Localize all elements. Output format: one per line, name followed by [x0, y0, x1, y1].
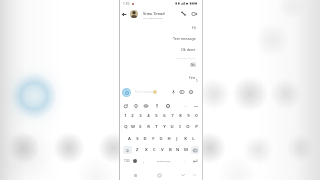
staticText: C	[153, 147, 156, 153]
button[interactable]: L	[189, 134, 197, 144]
staticText: Ok done	[181, 47, 196, 52]
button[interactable]: Voice message	[169, 87, 178, 96]
button[interactable]: Google search	[122, 102, 129, 109]
button[interactable]: H	[165, 134, 173, 144]
button[interactable]: ,	[139, 155, 148, 166]
button[interactable]: Home	[155, 171, 163, 179]
button[interactable]: Settings	[164, 102, 171, 109]
button[interactable]: G	[157, 134, 165, 144]
staticText: Srinu Tonad	[143, 11, 165, 16]
staticText: U	[170, 124, 174, 130]
button[interactable]: Contact photo	[130, 10, 138, 18]
button[interactable]: Q	[122, 122, 129, 132]
staticText: 8	[179, 113, 182, 119]
staticText: English (US)	[157, 159, 171, 162]
button[interactable]: M	[182, 145, 190, 155]
button[interactable]: J	[173, 134, 181, 144]
button[interactable]: V	[158, 145, 166, 155]
staticText: L	[192, 136, 195, 142]
staticText: No	[191, 63, 195, 67]
staticText: 4	[147, 113, 150, 119]
button[interactable]: U	[168, 122, 176, 132]
button[interactable]: 8	[176, 111, 184, 121]
button[interactable]: More options	[182, 103, 189, 110]
staticText: Sent · Mon 1:10 PM	[176, 57, 196, 60]
button[interactable]: Backspace	[191, 146, 199, 154]
button[interactable]: 1	[122, 111, 129, 121]
button[interactable]: ?123	[122, 155, 131, 166]
button[interactable]: Stickers	[153, 102, 160, 109]
staticText: G	[159, 136, 163, 142]
button[interactable]: Clipboard	[132, 102, 139, 109]
button[interactable]: D	[141, 134, 149, 144]
button[interactable]: A	[125, 134, 133, 144]
staticText: Yes	[192, 60, 196, 63]
staticText: Y	[163, 124, 166, 130]
staticText: O	[186, 124, 190, 130]
button[interactable]: Emoji keyboard	[131, 155, 139, 166]
button[interactable]: Y	[160, 122, 168, 132]
button[interactable]: 5	[152, 111, 160, 121]
staticText: P	[195, 124, 198, 130]
button[interactable]: N	[174, 145, 182, 155]
staticText: 6	[163, 113, 166, 119]
button[interactable]: 4	[144, 111, 152, 121]
button[interactable]: Call	[178, 8, 189, 19]
button[interactable]: Gallery	[177, 87, 186, 96]
staticText: K	[184, 136, 187, 142]
button[interactable]: T	[152, 122, 160, 132]
staticText: Z	[136, 147, 139, 153]
button[interactable]: O	[184, 122, 192, 132]
staticText: 1:10	[123, 2, 130, 6]
button[interactable]: Hide keyboard	[190, 171, 198, 179]
staticText: ,	[143, 158, 144, 163]
staticText: 9	[187, 113, 190, 119]
staticText: S	[136, 136, 139, 142]
button[interactable]: Back	[120, 10, 128, 18]
button[interactable]: Emoji	[186, 87, 195, 96]
staticText: .	[184, 158, 185, 163]
button[interactable]: X	[142, 145, 150, 155]
staticText: 2	[131, 113, 134, 119]
button[interactable]: R	[144, 122, 152, 132]
staticText: E	[139, 124, 142, 130]
button[interactable]: Enter	[189, 155, 200, 166]
staticText: ?123	[124, 159, 130, 163]
staticText: W	[131, 124, 135, 130]
button[interactable]: Shift	[123, 146, 132, 154]
button[interactable]: 6	[160, 111, 168, 121]
staticText: M	[184, 147, 188, 153]
button[interactable]: No	[191, 63, 195, 67]
button[interactable]: P	[192, 122, 200, 132]
button[interactable]: F	[149, 134, 157, 144]
button[interactable]: B	[166, 145, 174, 155]
button[interactable]: I	[176, 122, 184, 132]
staticText: 5	[155, 113, 158, 119]
button[interactable]: Open camera	[122, 88, 131, 97]
staticText: 7	[171, 113, 174, 119]
button[interactable]: 2	[129, 111, 136, 121]
button[interactable]: C	[150, 145, 158, 155]
button[interactable]: English (US)	[148, 155, 180, 166]
button[interactable]: Z	[133, 145, 142, 155]
staticText: Hi	[192, 25, 196, 30]
button[interactable]: Video call	[189, 8, 200, 19]
button[interactable]: GIF	[142, 102, 149, 109]
button[interactable]: K	[181, 134, 189, 144]
staticText: N	[176, 147, 180, 153]
staticText: X	[145, 147, 148, 153]
staticText: I	[179, 124, 181, 130]
button[interactable]: W	[129, 122, 136, 132]
staticText: Q	[124, 124, 128, 130]
staticText: V	[161, 147, 164, 153]
button[interactable]: S	[133, 134, 141, 144]
button[interactable]: E	[136, 122, 144, 132]
button[interactable]: 0	[192, 111, 200, 121]
button[interactable]: Collapse toolbar	[192, 103, 199, 110]
button[interactable]: 3	[136, 111, 144, 121]
button[interactable]: Recents	[131, 171, 139, 179]
button[interactable]: Back	[179, 171, 187, 179]
button[interactable]: 7	[168, 111, 176, 121]
button[interactable]: 9	[184, 111, 192, 121]
